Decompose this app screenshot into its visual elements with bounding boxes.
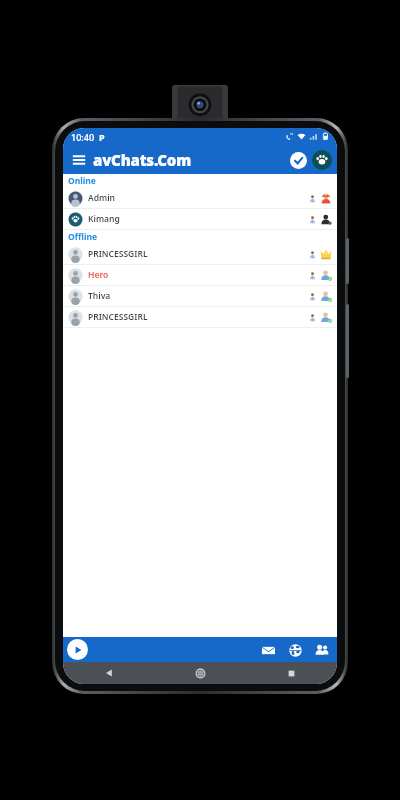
staticText: PRINCESSGIRL: [88, 248, 148, 260]
staticText: P: [99, 131, 105, 143]
staticText: Admin: [88, 192, 116, 204]
button[interactable]: PRINCESSGIRL: [63, 244, 337, 264]
staticText: Online: [68, 175, 96, 187]
button[interactable]: Admin: [63, 188, 337, 208]
button[interactable]: Profile: [312, 150, 332, 170]
button[interactable]: Recent apps: [246, 662, 337, 684]
button[interactable]: Messages: [259, 641, 277, 659]
staticText: avChats.Com: [93, 150, 191, 170]
button[interactable]: Hero: [63, 265, 337, 285]
button[interactable]: Users: [313, 641, 331, 659]
button[interactable]: PRINCESSGIRL: [63, 307, 337, 327]
staticText: Thiva: [88, 290, 111, 302]
button[interactable]: Verified status: [290, 152, 307, 169]
staticText: 10:40: [71, 131, 95, 143]
button[interactable]: Play: [67, 639, 88, 660]
button[interactable]: Thiva: [63, 286, 337, 306]
staticText: Offline: [68, 231, 98, 243]
button[interactable]: Home: [155, 662, 246, 684]
button[interactable]: Kimang: [63, 209, 337, 229]
staticText: Kimang: [88, 213, 120, 225]
button[interactable]: Back: [63, 662, 155, 684]
button[interactable]: Open navigation menu: [67, 148, 91, 172]
button[interactable]: Public rooms: [286, 641, 304, 659]
staticText: Hero: [88, 269, 109, 281]
staticText: PRINCESSGIRL: [88, 311, 148, 323]
